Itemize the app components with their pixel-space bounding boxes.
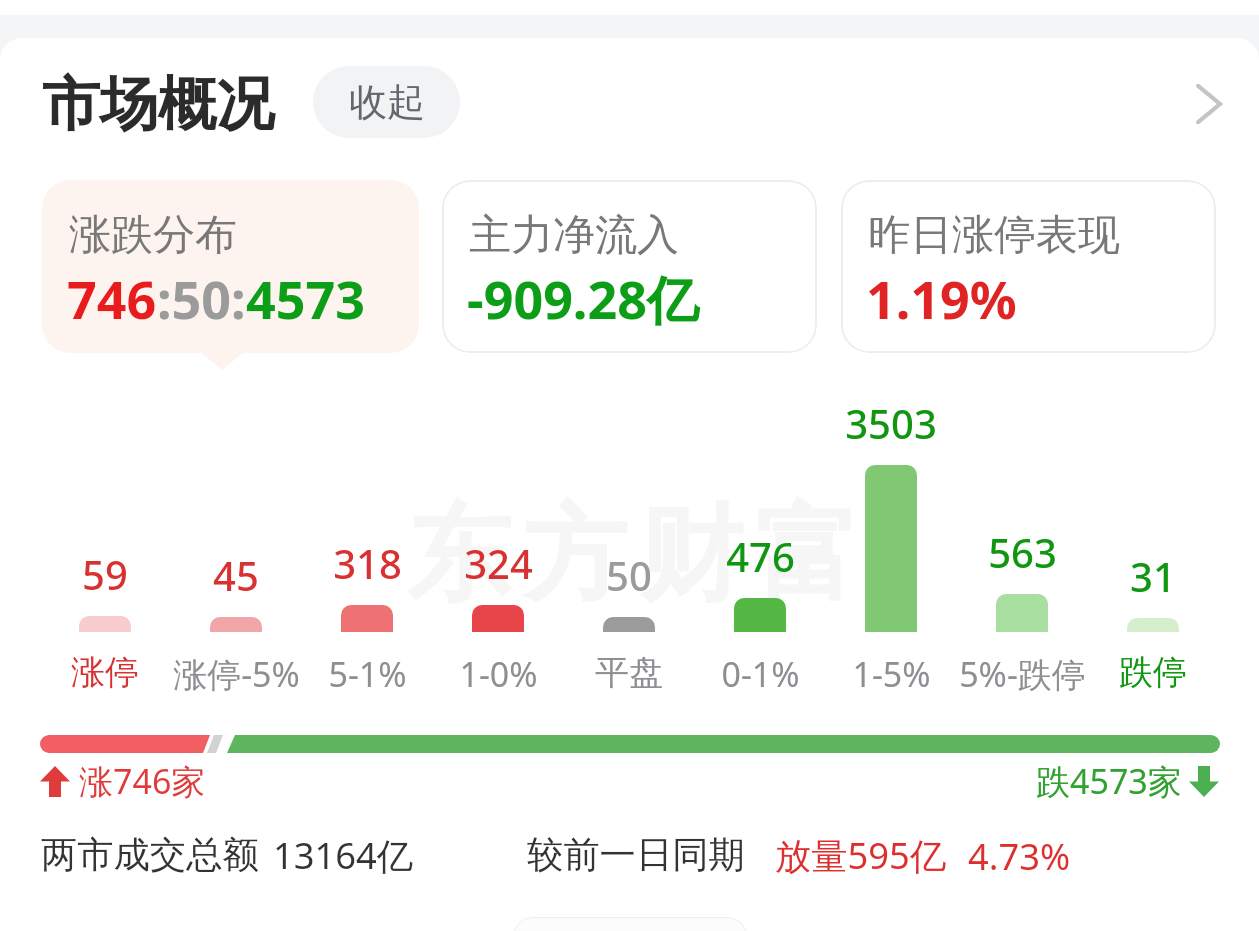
staticText: 放量595亿 [775,830,947,880]
button[interactable]: 收起 [313,66,460,138]
staticText: 0-1% [721,651,800,697]
button[interactable]: 59 [20,547,190,601]
staticText: 13164亿 [273,830,414,880]
staticText: 东方财富 [401,490,865,621]
staticText: 31 [1130,549,1176,603]
button[interactable]: 昨日涨停表现 [841,180,1216,353]
button[interactable]: 5%-跌停 [937,651,1107,697]
staticText: 5-1% [328,651,407,697]
button[interactable]: 324 [413,536,583,590]
staticText: 较前一日同期 [527,832,745,878]
staticText: 746 [67,263,157,334]
button[interactable]: 476 [675,529,845,583]
staticText: 跌停 [1119,651,1187,694]
staticText: 324 [464,536,533,590]
button[interactable]: 3503 [806,396,976,563]
button[interactable]: 主力净流入 [442,180,817,353]
staticText: 4573 [246,263,365,334]
staticText: 5%-跌停 [959,651,1086,697]
staticText: :50: [157,263,246,334]
staticText: 跌4573家 [1036,758,1182,804]
staticText: 主力净流入 [469,209,679,262]
staticText: 1-5% [852,651,931,697]
button[interactable]: 31 [1068,549,1238,603]
staticText: 涨停 [71,651,139,694]
button[interactable]: 市场概况 [42,64,274,141]
button[interactable]: 318 [282,536,452,590]
button[interactable]: 涨跌分布 [42,180,419,353]
staticText: 涨停-5% [173,651,300,697]
button[interactable]: 50 [544,548,714,602]
staticText: 市场概况 [42,68,274,141]
staticText: 两市成交总额 [41,832,259,878]
staticText: 昨日涨停表现 [868,209,1120,262]
button[interactable]: 平盘 [544,651,714,694]
button[interactable]: 563 [937,525,1107,579]
staticText: 涨746家 [79,758,206,804]
staticText: 收起 [349,78,425,126]
staticText: 1.19% [866,263,1017,334]
button[interactable]: 45 [151,548,321,602]
button[interactable]: 查看市场概况详情 [1170,70,1238,138]
staticText: 3503 [845,396,937,450]
staticText: 涨跌分布 [69,209,237,262]
staticText: 318 [333,536,402,590]
button[interactable]: 涨746家 [40,758,206,804]
staticText: 平盘 [595,651,663,694]
staticText: 50 [606,548,652,602]
staticText: 476 [726,529,795,583]
button[interactable]: 跌4573家 [1036,758,1219,804]
staticText: 59 [82,547,128,601]
staticText: 4.73% [968,831,1071,880]
button[interactable]: 更多 [513,917,747,931]
staticText: -909.28亿 [467,263,699,334]
button[interactable]: 涨停-5% [151,651,321,697]
staticText: 45 [213,548,259,602]
button[interactable]: 涨停 [20,651,190,694]
staticText: 1-0% [459,651,538,697]
button[interactable]: 1-5% [806,651,976,697]
button[interactable]: 1-0% [413,651,583,697]
button[interactable]: 5-1% [282,651,452,697]
button[interactable]: 0-1% [675,651,845,697]
button[interactable]: 跌停 [1068,651,1238,694]
staticText: 563 [988,525,1057,579]
